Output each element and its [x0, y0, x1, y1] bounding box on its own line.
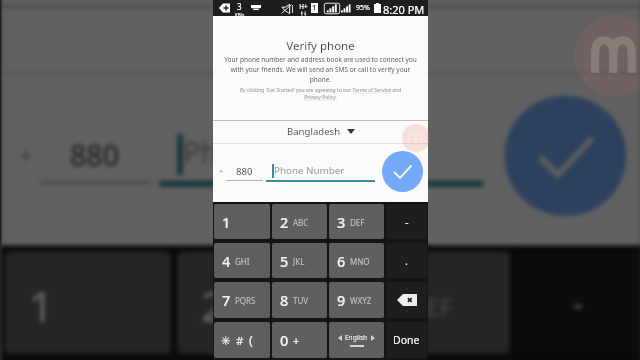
staticText: Phone Number — [183, 134, 394, 172]
staticText: Bangladesh — [287, 125, 341, 138]
staticText: + — [19, 140, 34, 169]
staticText: By clicking 'Get Started' you are agreei… — [237, 87, 404, 101]
staticText: Bangladesh — [222, 19, 382, 58]
staticText: 4 — [222, 251, 231, 271]
staticText: 1 — [222, 212, 231, 232]
button[interactable]: 1 — [214, 204, 270, 239]
staticText: 2 — [201, 275, 228, 333]
staticText: 7 — [222, 290, 231, 310]
staticText: DEF — [409, 289, 454, 322]
staticText: 3 — [337, 212, 346, 232]
staticText: ABC — [240, 289, 287, 322]
staticText: 1 — [312, 3, 317, 13]
staticText: Your phone number and address book are u… — [222, 55, 419, 84]
staticText: Done — [393, 333, 420, 347]
button[interactable]: Delete — [386, 282, 427, 318]
button[interactable]: Continue — [504, 96, 626, 216]
staticText: + — [293, 333, 300, 348]
staticText: 3 — [370, 275, 397, 333]
staticText: H+ — [299, 2, 308, 11]
button[interactable]: ✳ — [214, 322, 270, 358]
staticText: KB/s — [235, 12, 245, 17]
staticText: - — [573, 281, 585, 325]
staticText: JKL — [293, 256, 305, 267]
staticText: 3 — [237, 1, 242, 12]
staticText: # — [236, 333, 244, 349]
button[interactable]: 3 — [329, 204, 384, 239]
button[interactable]: 8 — [272, 282, 327, 318]
button[interactable]: English — [329, 322, 384, 358]
button[interactable]: . — [386, 243, 427, 278]
staticText: 0 — [280, 330, 289, 350]
button[interactable]: - — [386, 204, 427, 239]
button[interactable]: 2 — [177, 251, 341, 354]
staticText: + — [219, 166, 224, 176]
staticText: 9 — [337, 290, 346, 310]
staticText: 2 — [280, 212, 289, 232]
staticText: 1 — [28, 275, 55, 333]
button[interactable]: Continue — [382, 151, 423, 192]
button[interactable]: Done — [386, 322, 427, 358]
staticText: English — [345, 333, 368, 342]
button[interactable]: 7 — [214, 282, 270, 318]
staticText: PQRS — [235, 295, 256, 306]
button[interactable]: 4 — [214, 243, 270, 278]
button[interactable]: 6 — [329, 243, 384, 278]
staticText: - — [405, 214, 409, 229]
button[interactable]: 1 — [5, 251, 171, 354]
staticText: 880 — [236, 165, 253, 178]
button[interactable]: 5 — [272, 243, 327, 278]
button[interactable]: 2 — [272, 204, 327, 239]
staticText: 6 — [337, 251, 346, 271]
other: Delete — [397, 294, 417, 306]
staticText: . — [405, 253, 408, 268]
button[interactable]: 0 — [272, 322, 327, 358]
staticText: 5 — [280, 251, 289, 271]
button[interactable]: 9 — [329, 282, 384, 318]
staticText: WXYZ — [350, 295, 372, 306]
staticText: ABC — [293, 217, 309, 228]
staticText: 95% — [356, 3, 370, 13]
staticText: MNO — [350, 256, 370, 267]
staticText: ✳ — [221, 334, 231, 347]
staticText: Verify phone — [213, 38, 428, 54]
staticText: 8:20 PM — [383, 2, 425, 17]
button[interactable]: Bangladesh — [213, 120, 428, 143]
staticText: ( — [249, 332, 253, 349]
staticText: Phone Number — [274, 164, 345, 177]
staticText: TUV — [293, 295, 309, 306]
staticText: 880 — [70, 137, 121, 175]
button[interactable]: 3 — [347, 251, 510, 354]
staticText: DEF — [350, 217, 365, 228]
staticText: 8 — [280, 290, 289, 310]
staticText: GHI — [235, 256, 250, 267]
button[interactable]: Bangladesh — [2, 5, 640, 72]
